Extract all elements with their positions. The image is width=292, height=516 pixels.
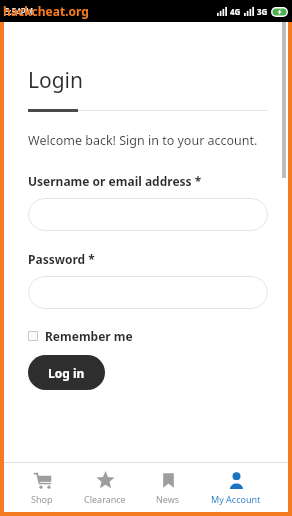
staticText: Remember me [45,328,133,344]
staticText: 5:54PM [5,6,33,17]
button[interactable] [28,198,268,231]
staticText: Password * [28,251,95,267]
button[interactable]: My Account [207,463,265,512]
staticText: News [156,493,180,505]
staticText: 4G [230,6,241,17]
button[interactable]: Remember me [28,328,133,344]
staticText: Login [28,66,84,95]
staticText: My Account [211,493,261,505]
button[interactable]: Shop [27,463,57,512]
staticText: Username or email address * [28,173,202,189]
staticText: Clearance [84,493,126,505]
button[interactable] [28,276,268,309]
staticText: Shop [31,493,53,505]
staticText: hackcheat.org [3,3,89,19]
staticText: 3G [257,6,268,17]
button[interactable]: Clearance [80,463,130,512]
staticText: Log in [48,365,85,381]
button[interactable]: Log in [28,355,105,390]
staticText: Welcome back! Sign in to your account. [28,132,258,149]
button[interactable]: News [152,463,184,512]
